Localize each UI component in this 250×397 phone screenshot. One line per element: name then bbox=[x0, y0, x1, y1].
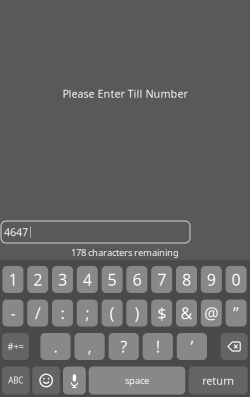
staticText: Please Enter Till Number bbox=[62, 86, 187, 101]
staticText: 1 bbox=[8, 269, 17, 290]
staticText: 6 bbox=[132, 269, 141, 290]
staticText: $ bbox=[157, 302, 166, 324]
staticText: ! bbox=[156, 336, 160, 357]
staticText: 7 bbox=[157, 269, 166, 290]
staticText: ” bbox=[233, 302, 239, 324]
button[interactable]: 8 bbox=[176, 266, 197, 293]
button[interactable]: ) bbox=[126, 299, 147, 326]
button[interactable]: 3 bbox=[52, 266, 73, 293]
staticText: return bbox=[202, 373, 234, 388]
staticText: 9 bbox=[207, 269, 216, 290]
staticText: 178 characters remaining bbox=[71, 246, 179, 259]
button[interactable]: ? bbox=[109, 333, 139, 360]
staticText: ABC bbox=[8, 375, 23, 386]
button[interactable]: Dictate bbox=[63, 366, 86, 394]
staticText: 2 bbox=[33, 269, 42, 290]
button[interactable]: @ bbox=[201, 299, 222, 326]
staticText: & bbox=[180, 302, 192, 324]
button[interactable]: 6 bbox=[126, 266, 147, 293]
button[interactable]: 9 bbox=[201, 266, 222, 293]
staticText: space bbox=[125, 374, 149, 387]
staticText: ’ bbox=[190, 336, 193, 357]
button[interactable]: Letters bbox=[2, 366, 30, 394]
staticText: / bbox=[35, 302, 41, 324]
button[interactable]: ’ bbox=[177, 333, 207, 360]
button[interactable]: / bbox=[27, 299, 48, 326]
staticText: , bbox=[88, 336, 92, 357]
staticText: ? bbox=[120, 336, 127, 357]
button[interactable]: , bbox=[74, 333, 105, 360]
button[interactable]: More symbols bbox=[2, 333, 29, 360]
button[interactable]: 5 bbox=[102, 266, 123, 293]
button[interactable]: 4 bbox=[77, 266, 98, 293]
staticText: ( bbox=[110, 302, 115, 324]
button[interactable]: Emoji bbox=[32, 366, 60, 394]
button[interactable]: - bbox=[2, 299, 23, 326]
staticText: - bbox=[10, 302, 15, 324]
staticText: 3 bbox=[58, 269, 67, 290]
button[interactable]: ; bbox=[77, 299, 98, 326]
button[interactable]: space bbox=[89, 366, 185, 394]
staticText: : bbox=[60, 302, 64, 324]
button[interactable]: 7 bbox=[151, 266, 172, 293]
staticText: 4647 bbox=[4, 225, 28, 239]
button[interactable]: 2 bbox=[27, 266, 48, 293]
button[interactable]: : bbox=[52, 299, 73, 326]
button[interactable]: ( bbox=[102, 299, 123, 326]
button[interactable]: & bbox=[176, 299, 197, 326]
button[interactable]: 0 bbox=[226, 266, 247, 293]
button[interactable]: ” bbox=[226, 299, 247, 326]
staticText: @ bbox=[204, 302, 218, 324]
button[interactable]: ! bbox=[143, 333, 173, 360]
staticText: 0 bbox=[232, 269, 241, 290]
button[interactable]: Delete bbox=[221, 333, 248, 360]
staticText: 8 bbox=[182, 269, 191, 290]
staticText: . bbox=[53, 336, 57, 357]
button[interactable]: return bbox=[189, 366, 248, 394]
button[interactable]: . bbox=[40, 333, 71, 360]
button[interactable]: 1 bbox=[2, 266, 23, 293]
staticText: ) bbox=[134, 302, 139, 324]
staticText: #+= bbox=[7, 340, 23, 353]
staticText: 4 bbox=[83, 269, 92, 290]
button[interactable]: $ bbox=[151, 299, 172, 326]
staticText: ; bbox=[85, 302, 89, 324]
staticText: 5 bbox=[108, 269, 117, 290]
